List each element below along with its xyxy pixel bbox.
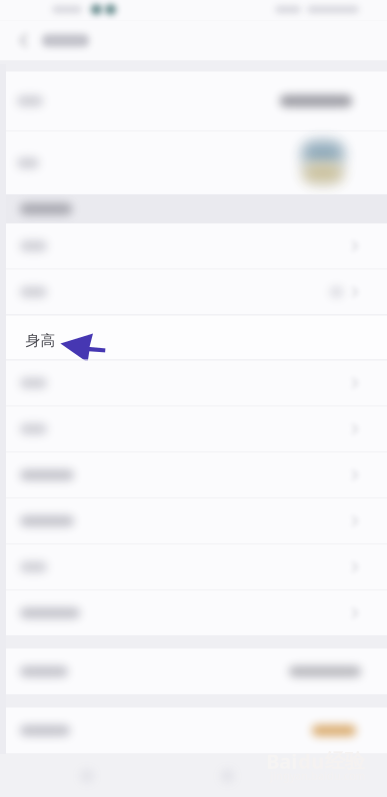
button[interactable]	[0, 223, 387, 268]
button[interactable]: 身高	[0, 314, 387, 360]
staticText: Bai	[266, 748, 297, 774]
button[interactable]	[0, 131, 387, 194]
button[interactable]: Back	[6, 20, 42, 60]
button[interactable]	[0, 71, 387, 130]
staticText: 经验	[325, 749, 365, 773]
button[interactable]	[0, 269, 387, 314]
button[interactable]	[0, 544, 387, 589]
staticText: du	[298, 748, 324, 774]
button[interactable]	[0, 452, 387, 497]
button[interactable]	[0, 648, 387, 694]
button[interactable]	[0, 707, 387, 753]
button[interactable]	[0, 498, 387, 543]
button[interactable]	[0, 406, 387, 451]
button[interactable]	[0, 590, 387, 635]
staticText: 身高	[25, 331, 55, 349]
button[interactable]	[0, 360, 387, 405]
